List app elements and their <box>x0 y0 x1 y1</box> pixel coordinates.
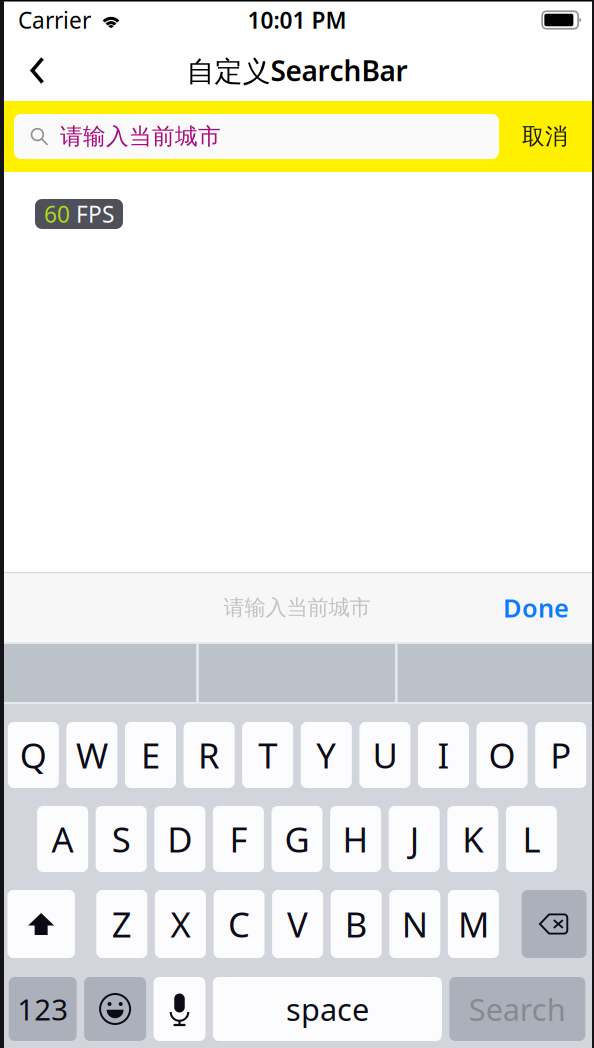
staticText: Z <box>112 901 132 947</box>
staticText: 60 <box>44 199 70 229</box>
button[interactable]: B <box>331 890 382 958</box>
staticText: E <box>141 732 160 778</box>
button[interactable]: I <box>418 722 469 788</box>
button[interactable]: P <box>535 722 586 788</box>
button[interactable]: Search <box>449 977 585 1041</box>
button[interactable]: M <box>448 890 499 958</box>
staticText: 自定义SearchBar <box>186 52 407 89</box>
staticText: X <box>170 901 190 947</box>
staticText: G <box>284 816 309 862</box>
staticText: N <box>402 901 428 947</box>
staticText: Y <box>316 732 336 778</box>
staticText: C <box>228 901 250 947</box>
button[interactable]: 123 <box>9 977 77 1041</box>
staticText: B <box>345 901 368 947</box>
button[interactable]: R <box>184 722 235 788</box>
staticText: 取消 <box>522 123 568 150</box>
button[interactable]: C <box>213 890 264 958</box>
staticText: Done <box>503 591 569 624</box>
button[interactable]: A <box>37 806 88 872</box>
staticText: P <box>550 732 571 778</box>
button[interactable]: Delete <box>522 890 587 958</box>
button[interactable]: Z <box>96 890 147 958</box>
staticText: J <box>410 816 419 862</box>
staticText: FPS <box>70 199 114 229</box>
staticText: F <box>229 816 247 862</box>
staticText: 10:01 PM <box>247 5 346 35</box>
button[interactable]: S <box>96 806 147 872</box>
button[interactable]: D <box>154 806 205 872</box>
staticText: M <box>458 901 489 947</box>
button[interactable]: G <box>271 806 322 872</box>
button[interactable]: Dictation <box>153 977 205 1041</box>
staticText: T <box>258 732 277 778</box>
button[interactable]: E <box>125 722 176 788</box>
staticText: S <box>112 816 131 862</box>
staticText: W <box>76 732 108 778</box>
button[interactable]: space <box>213 977 442 1041</box>
staticText: 请输入当前城市 <box>60 123 221 150</box>
staticText: 请输入当前城市 <box>223 594 370 621</box>
staticText: Q <box>20 732 47 778</box>
button[interactable]: 请输入当前城市 <box>14 114 499 159</box>
staticText: R <box>198 732 220 778</box>
button[interactable]: N <box>389 890 440 958</box>
staticText: L <box>522 816 540 862</box>
button[interactable]: Q <box>8 722 59 788</box>
staticText: space <box>286 989 369 1029</box>
button[interactable]: 取消 <box>522 114 568 159</box>
staticText: K <box>462 816 483 862</box>
staticText: Carrier <box>18 5 91 35</box>
staticText: H <box>343 816 369 862</box>
button[interactable]: J <box>389 806 440 872</box>
staticText: V <box>287 901 308 947</box>
button[interactable]: V <box>272 890 323 958</box>
button[interactable]: Y <box>301 722 352 788</box>
button[interactable]: H <box>330 806 381 872</box>
button[interactable]: Back <box>11 44 63 96</box>
button[interactable]: F <box>213 806 264 872</box>
button[interactable]: K <box>447 806 498 872</box>
button[interactable]: X <box>155 890 206 958</box>
staticText: I <box>437 732 449 778</box>
button[interactable]: Emoji <box>84 977 146 1041</box>
button[interactable]: T <box>242 722 293 788</box>
staticText: O <box>489 732 516 778</box>
button[interactable]: L <box>506 806 557 872</box>
staticText: D <box>167 816 192 862</box>
staticText: Search <box>469 989 566 1029</box>
staticText: U <box>372 732 397 778</box>
staticText: 123 <box>17 989 68 1028</box>
button[interactable]: U <box>359 722 410 788</box>
button[interactable]: Shift <box>7 890 75 958</box>
button[interactable]: W <box>66 722 117 788</box>
button[interactable]: Done <box>495 591 577 624</box>
staticText: A <box>52 816 74 862</box>
button[interactable]: O <box>477 722 528 788</box>
